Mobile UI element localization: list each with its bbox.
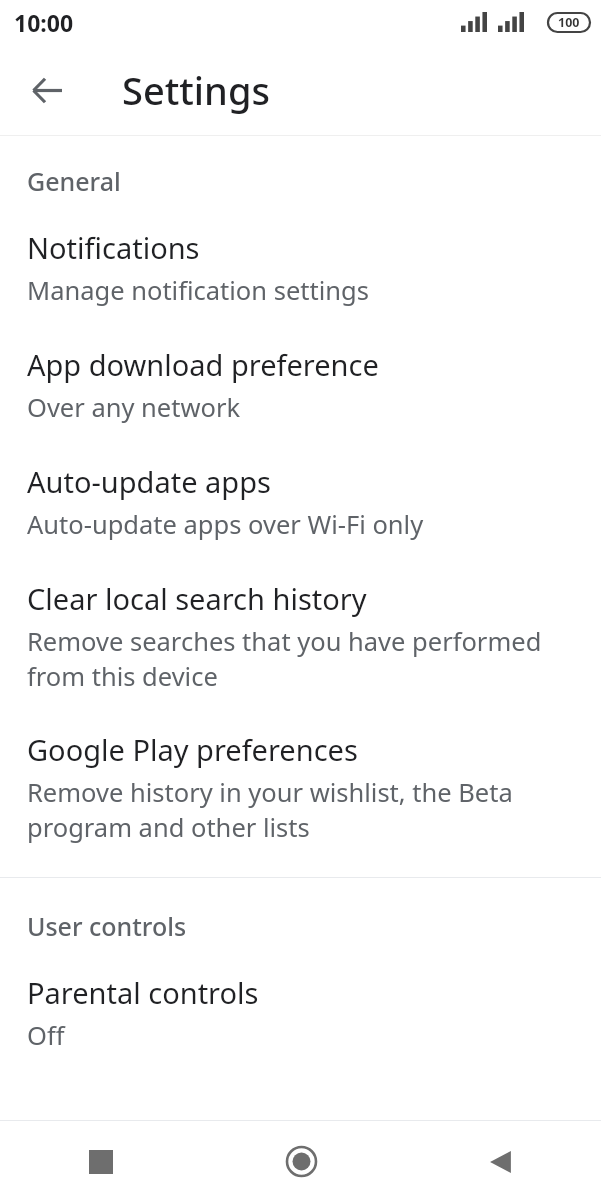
staticText: Settings bbox=[122, 64, 270, 116]
button[interactable]: Back bbox=[14, 57, 80, 123]
button[interactable]: Parental controls bbox=[0, 973, 601, 1053]
staticText: Google Play preferences bbox=[27, 730, 358, 769]
staticText: Auto-update apps bbox=[27, 462, 271, 501]
staticText: Remove searches that you have performed … bbox=[27, 624, 571, 693]
button[interactable]: Google Play preferences bbox=[0, 730, 601, 844]
button[interactable]: Auto-update apps bbox=[0, 462, 601, 542]
staticText: Auto-update apps over Wi-Fi only bbox=[27, 507, 424, 542]
button[interactable]: Home bbox=[201, 1121, 401, 1202]
button[interactable]: Clear local search history bbox=[0, 579, 601, 693]
staticText: App download preference bbox=[27, 345, 379, 384]
staticText: General bbox=[27, 164, 121, 198]
staticText: Clear local search history bbox=[27, 579, 367, 618]
button[interactable]: Recent apps bbox=[0, 1121, 201, 1202]
staticText: Off bbox=[27, 1018, 65, 1053]
staticText: Notifications bbox=[27, 228, 200, 267]
staticText: Parental controls bbox=[27, 973, 259, 1012]
button[interactable]: App download preference bbox=[0, 345, 601, 425]
staticText: Manage notification settings bbox=[27, 273, 369, 308]
staticText: 10:00 bbox=[14, 7, 74, 38]
staticText: User controls bbox=[27, 909, 187, 943]
staticText: 100 bbox=[558, 14, 580, 31]
staticText: Remove history in your wishlist, the Bet… bbox=[27, 775, 571, 844]
button[interactable]: Back bbox=[401, 1121, 601, 1202]
staticText: Over any network bbox=[27, 390, 241, 425]
button[interactable]: Notifications bbox=[0, 228, 601, 308]
